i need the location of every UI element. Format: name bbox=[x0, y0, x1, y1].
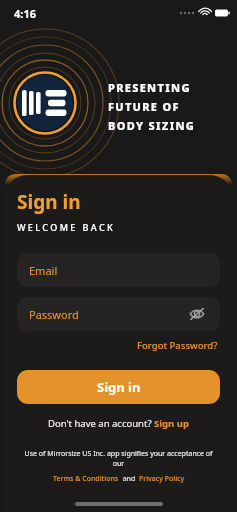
button[interactable]: Privacy Policy bbox=[139, 474, 185, 484]
staticText: Password bbox=[29, 307, 79, 322]
staticText: Use of Mirrorsize US Inc. app signifies … bbox=[19, 449, 218, 469]
staticText: Terms & Conditions bbox=[53, 474, 119, 484]
button[interactable]: Email bbox=[17, 253, 220, 287]
staticText: Sign in bbox=[97, 378, 141, 396]
button[interactable]: Show password bbox=[186, 303, 208, 325]
staticText: and bbox=[119, 474, 139, 484]
button[interactable]: Sign in bbox=[17, 370, 220, 404]
button[interactable]: Forgot Password? bbox=[135, 337, 220, 354]
staticText: Forgot Password? bbox=[137, 339, 218, 352]
button[interactable]: Don't have an account? Sign up bbox=[46, 415, 191, 432]
staticText: Privacy Policy bbox=[139, 474, 185, 484]
staticText: PRESENTING bbox=[108, 80, 191, 95]
button[interactable]: Terms & Conditions bbox=[53, 474, 119, 484]
staticText: Don't have an account? Sign up bbox=[48, 417, 189, 430]
staticText: Sign in bbox=[17, 189, 81, 215]
staticText: 4:16 bbox=[14, 6, 36, 21]
staticText: BODY SIZING bbox=[108, 118, 196, 133]
staticText: FUTURE OF bbox=[108, 99, 180, 114]
staticText: Email bbox=[29, 263, 58, 278]
button[interactable]: Password bbox=[17, 297, 220, 331]
staticText: WELCOME BACK bbox=[17, 221, 116, 233]
